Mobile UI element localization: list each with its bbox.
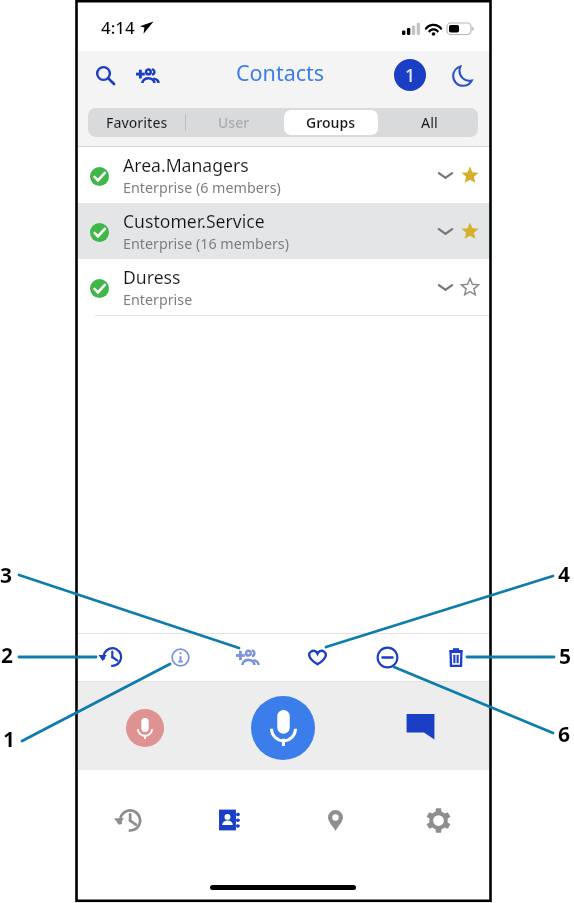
button[interactable]: Info bbox=[163, 640, 197, 674]
staticText: 4 bbox=[558, 560, 571, 589]
staticText: 1 bbox=[3, 725, 16, 754]
button[interactable]: Groups bbox=[284, 110, 378, 135]
button[interactable]: Add contact group bbox=[130, 57, 166, 93]
button[interactable]: Duress bbox=[77, 259, 490, 315]
staticText: Enterprise bbox=[123, 290, 193, 309]
staticText: User bbox=[218, 113, 250, 132]
button[interactable]: Recents bbox=[104, 796, 152, 844]
staticText: 4:14 bbox=[101, 16, 135, 39]
staticText: Favorites bbox=[106, 113, 168, 132]
button[interactable]: Expand bbox=[430, 160, 460, 190]
staticText: Enterprise (6 members) bbox=[123, 178, 281, 197]
button[interactable]: Delete bbox=[439, 640, 473, 674]
staticText: 3 bbox=[0, 561, 13, 590]
staticText: All bbox=[421, 113, 438, 132]
button[interactable]: Favorite bbox=[460, 218, 486, 244]
staticText: Enterprise (16 members) bbox=[123, 234, 289, 253]
staticText: 5 bbox=[559, 642, 572, 671]
button[interactable]: Expand bbox=[430, 272, 460, 302]
button[interactable]: User bbox=[187, 110, 280, 135]
button[interactable]: History bbox=[94, 640, 128, 674]
button[interactable]: Contacts bbox=[207, 796, 255, 844]
button[interactable]: Microphone bbox=[251, 696, 315, 760]
staticText: Contacts bbox=[236, 58, 325, 87]
staticText: 2 bbox=[1, 641, 14, 670]
button[interactable]: Area.Managers bbox=[77, 147, 490, 203]
button[interactable]: Search bbox=[88, 58, 122, 92]
button[interactable]: Messages bbox=[405, 712, 436, 741]
button[interactable]: Remove bbox=[370, 640, 404, 674]
button[interactable]: Favorites bbox=[90, 110, 183, 135]
staticText: Groups bbox=[306, 113, 356, 132]
button[interactable]: Dark mode bbox=[448, 61, 478, 91]
staticText: 6 bbox=[558, 720, 571, 749]
button[interactable]: Expand bbox=[430, 216, 460, 246]
button[interactable]: Favorite bbox=[300, 640, 334, 674]
button[interactable]: Customer.Service bbox=[77, 203, 490, 259]
button[interactable]: Favorite bbox=[460, 274, 486, 300]
staticText: Customer.Service bbox=[123, 209, 265, 233]
button[interactable]: 1 bbox=[394, 59, 426, 91]
button[interactable]: All bbox=[382, 110, 476, 135]
button[interactable]: Add group bbox=[231, 640, 265, 674]
staticText: 1 bbox=[405, 63, 416, 88]
staticText: Duress bbox=[123, 265, 181, 289]
staticText: Area.Managers bbox=[123, 153, 249, 177]
button[interactable]: Settings bbox=[414, 796, 462, 844]
button[interactable]: Favorite bbox=[460, 162, 486, 188]
button[interactable]: Map bbox=[311, 796, 359, 844]
button[interactable]: Mute microphone bbox=[126, 709, 164, 747]
